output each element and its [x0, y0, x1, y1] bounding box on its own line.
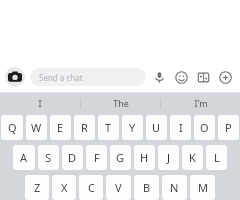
staticText: D [68, 150, 77, 165]
button[interactable]: Z [25, 175, 49, 200]
staticText: G [116, 150, 125, 165]
staticText: T [105, 120, 112, 135]
button[interactable]: C [79, 175, 103, 200]
staticText: F [94, 150, 100, 165]
button[interactable]: G [110, 145, 131, 170]
staticText: L [214, 150, 220, 165]
button[interactable]: M [190, 175, 215, 200]
button[interactable]: E [50, 115, 71, 140]
button[interactable]: H [134, 145, 155, 170]
button[interactable]: Voice message [150, 68, 168, 86]
button[interactable]: P [218, 115, 239, 140]
button[interactable]: Y [122, 115, 143, 140]
button[interactable]: I [170, 115, 191, 140]
staticText: A [20, 150, 28, 165]
button[interactable]: D [62, 145, 83, 170]
button[interactable]: R [74, 115, 95, 140]
staticText: B [143, 180, 151, 195]
button[interactable]: X [52, 175, 76, 200]
staticText: E [57, 120, 64, 135]
staticText: V [115, 180, 122, 195]
button[interactable]: S [38, 145, 59, 170]
staticText: R [81, 120, 88, 135]
staticText: Send a chat [39, 72, 83, 83]
staticText: K [189, 150, 196, 165]
staticText: M [198, 180, 208, 195]
staticText: N [170, 180, 179, 195]
staticText: X [61, 180, 68, 195]
staticText: W [31, 120, 42, 135]
button[interactable]: F [86, 145, 107, 170]
button[interactable]: Stickers [194, 68, 212, 86]
staticText: Z [34, 180, 41, 195]
staticText: S [45, 150, 52, 165]
button[interactable]: Send a chat [30, 68, 146, 86]
button[interactable]: V [106, 175, 131, 200]
button[interactable]: Q [1, 115, 23, 140]
button[interactable]: More options [216, 68, 234, 86]
staticText: H [140, 150, 149, 165]
button[interactable]: The [81, 93, 160, 113]
staticText: I [179, 120, 183, 135]
button[interactable]: I'm [161, 93, 240, 113]
staticText: J [167, 150, 171, 165]
button[interactable]: Emoji [172, 68, 190, 86]
button[interactable]: L [206, 145, 227, 170]
button[interactable]: W [26, 115, 47, 140]
staticText: I [38, 97, 42, 109]
button[interactable]: B [134, 175, 159, 200]
button[interactable]: T [98, 115, 119, 140]
button[interactable]: A [13, 145, 35, 170]
staticText: The [113, 97, 129, 109]
button[interactable]: K [182, 145, 203, 170]
staticText: O [200, 120, 209, 135]
button[interactable]: O [194, 115, 215, 140]
button[interactable]: N [162, 175, 187, 200]
staticText: P [225, 120, 232, 135]
staticText: U [152, 120, 161, 135]
staticText: C [88, 180, 95, 195]
button[interactable]: U [146, 115, 167, 140]
staticText: Q [8, 120, 17, 135]
staticText: I'm [194, 97, 208, 109]
button[interactable]: J [158, 145, 179, 170]
button[interactable]: I [0, 93, 80, 113]
staticText: Y [129, 120, 136, 135]
button[interactable]: Camera [5, 67, 25, 87]
